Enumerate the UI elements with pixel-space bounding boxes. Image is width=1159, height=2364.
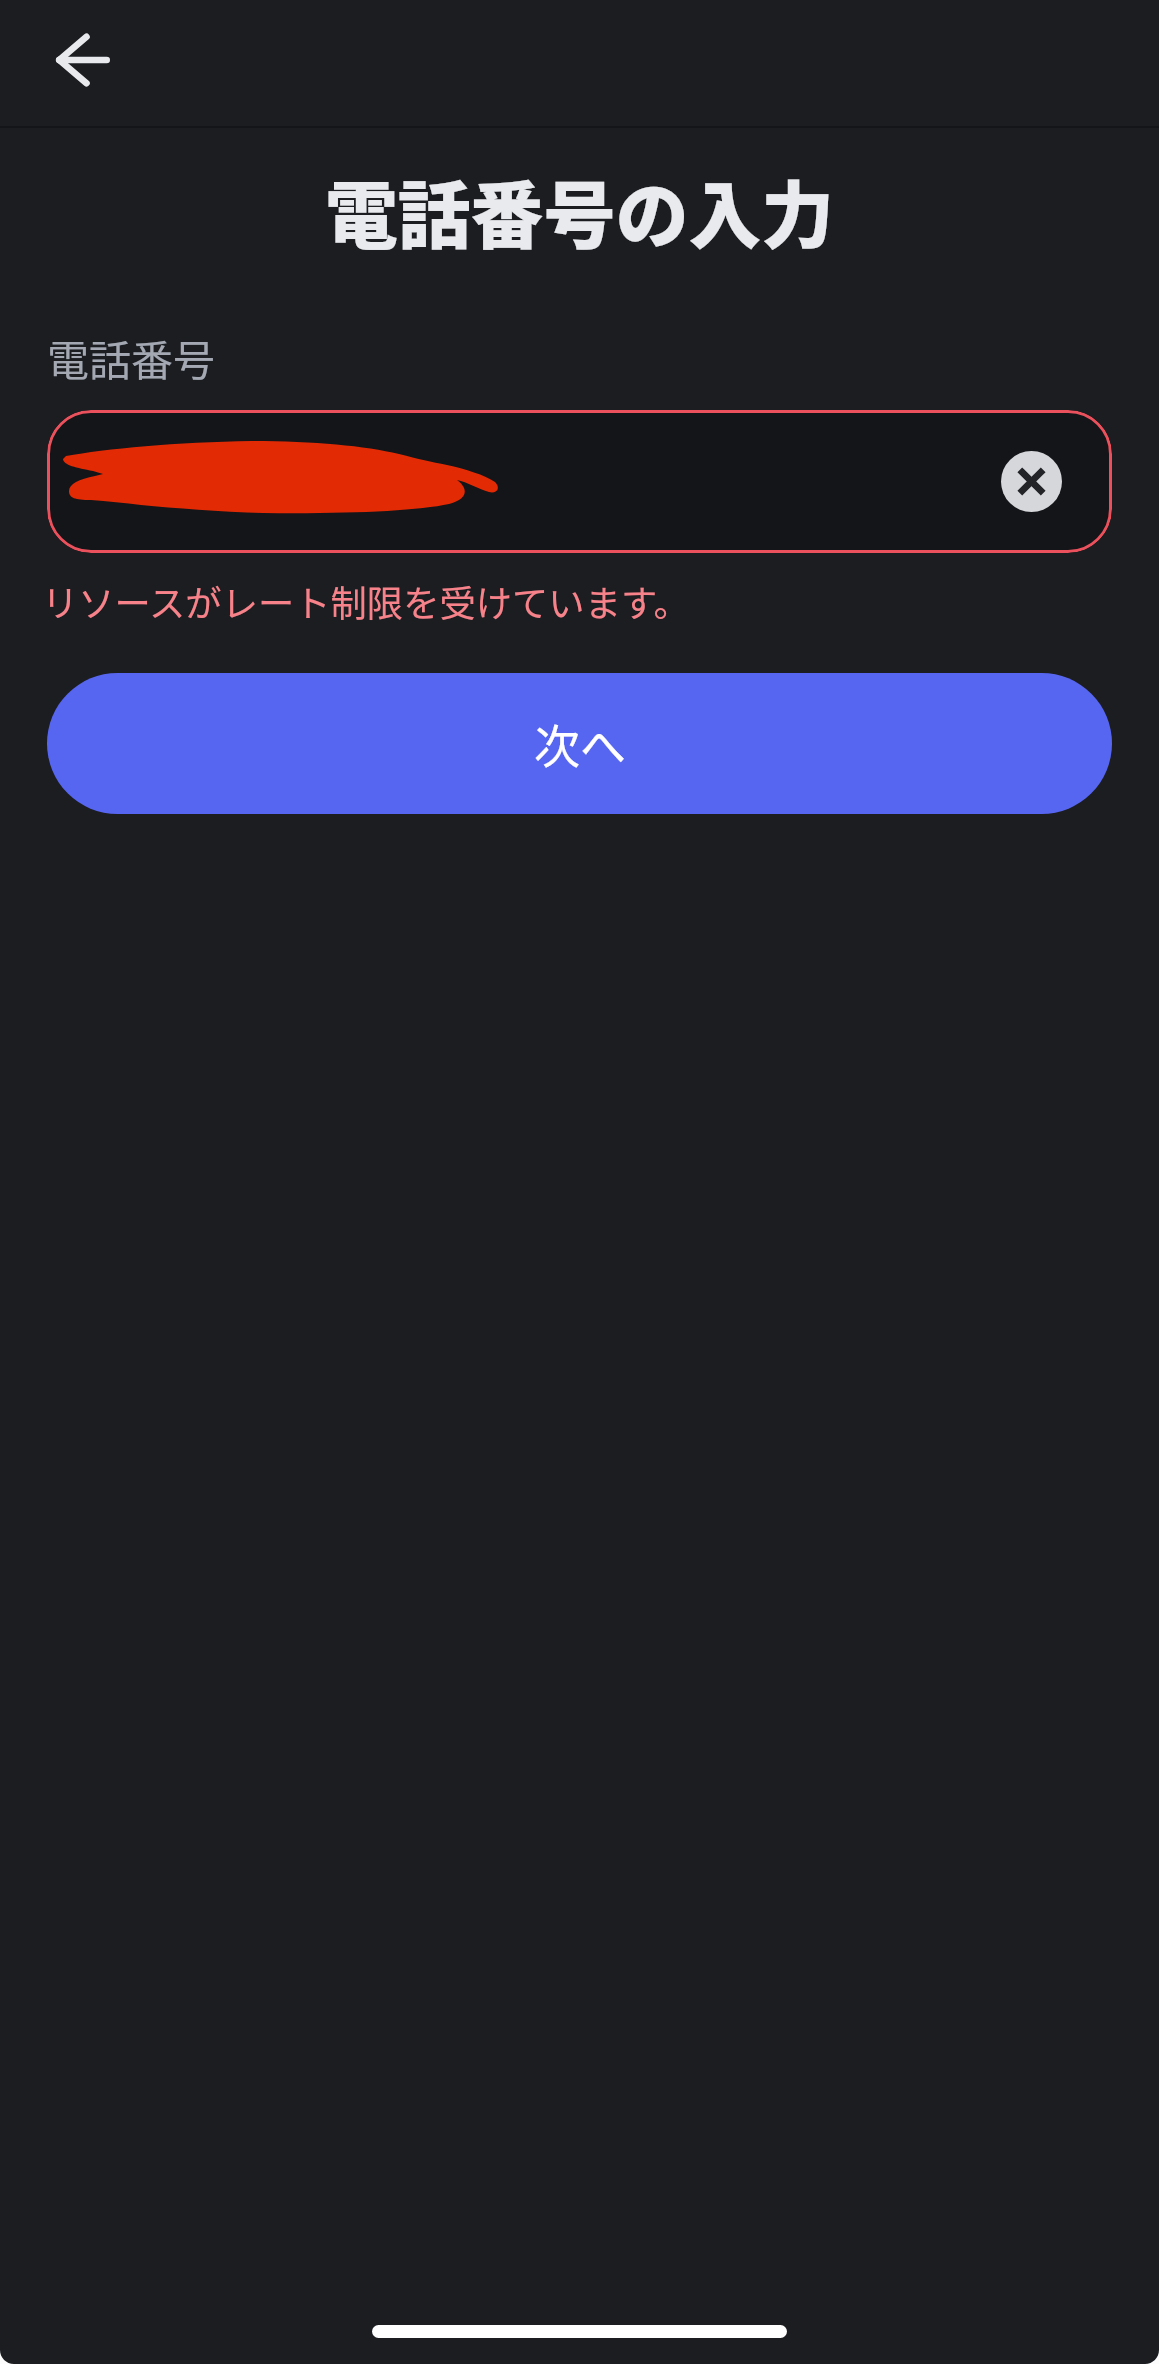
staticText: 次へ xyxy=(534,710,626,777)
button[interactable]: Back xyxy=(38,20,124,106)
button[interactable]: 次へ xyxy=(47,673,1112,814)
staticText: リソースがレート制限を受けています。 xyxy=(42,575,690,628)
button[interactable]: Clear text xyxy=(1001,451,1062,512)
staticText: 電話番号の入力 xyxy=(0,158,1159,263)
staticText: 電話番号 xyxy=(47,327,216,388)
button[interactable]: Clear text xyxy=(47,410,1112,553)
